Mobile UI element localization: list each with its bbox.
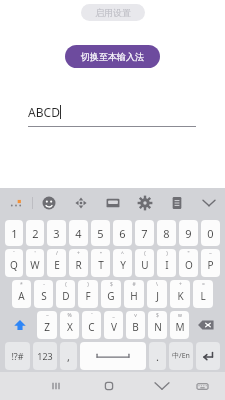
staticText: 1 <box>11 226 18 241</box>
button[interactable]: - <box>34 280 53 308</box>
staticText: w <box>178 312 182 319</box>
button[interactable]: ) <box>157 249 176 277</box>
button[interactable]: Handwriting <box>97 188 129 218</box>
button[interactable]: More <box>0 188 32 218</box>
button[interactable]: !?# <box>5 342 30 370</box>
button[interactable]: ~ <box>201 249 220 277</box>
staticText: M <box>175 320 185 334</box>
staticText: T <box>98 258 104 272</box>
button[interactable]: 5 <box>91 220 110 246</box>
button[interactable]: 切换至本输入法 <box>65 45 160 68</box>
button[interactable]: ) <box>78 280 98 308</box>
button[interactable]: = <box>193 280 213 308</box>
button[interactable]: 123 <box>33 342 57 370</box>
staticText: . <box>156 349 159 364</box>
button[interactable]: Recents <box>43 373 69 399</box>
button[interactable]: + <box>170 280 190 308</box>
staticText: H <box>130 289 138 303</box>
button[interactable]: Keyboard <box>189 373 215 399</box>
staticText: 5 <box>97 226 104 241</box>
staticText: 3 <box>53 226 60 241</box>
button[interactable]: _ <box>104 311 123 339</box>
button[interactable]: / <box>47 249 66 277</box>
button[interactable]: 2 <box>26 220 44 246</box>
button[interactable]: ` <box>82 311 101 339</box>
button[interactable]: Clipboard <box>161 188 193 218</box>
button[interactable]: * <box>12 280 31 308</box>
button[interactable]: . <box>149 342 166 370</box>
button[interactable]: ^ <box>113 249 132 277</box>
staticText: O <box>185 258 193 272</box>
button[interactable]: 0 <box>201 220 220 246</box>
button[interactable]: ( <box>135 249 154 277</box>
button[interactable]: Back <box>149 373 175 399</box>
staticText: U <box>141 258 149 272</box>
staticText: J <box>156 289 159 303</box>
staticText: ( <box>144 250 146 257</box>
staticText: P <box>207 258 214 272</box>
button[interactable]: 1 <box>5 220 23 246</box>
button[interactable]: v <box>126 311 145 339</box>
staticText: Z <box>44 320 50 334</box>
staticText: A <box>18 289 25 303</box>
staticText: - <box>43 281 45 288</box>
button[interactable]: % <box>60 311 79 339</box>
staticText: Y <box>120 258 126 272</box>
button[interactable]: , <box>60 342 77 370</box>
button[interactable]: # <box>124 280 144 308</box>
staticText: 123 <box>37 350 53 362</box>
staticText: \ <box>156 281 158 288</box>
button[interactable]: • <box>91 249 110 277</box>
button[interactable]: 8 <box>157 220 176 246</box>
button[interactable]: Space <box>80 342 146 370</box>
staticText: 2 <box>32 226 39 241</box>
button[interactable]: \ <box>147 280 167 308</box>
button[interactable]: ' <box>26 249 44 277</box>
button[interactable]: 3 <box>47 220 66 246</box>
staticText: V <box>111 320 117 334</box>
staticText: 6 <box>119 226 126 241</box>
staticText: 0 <box>207 226 214 241</box>
staticText: ` <box>91 312 93 319</box>
staticText: C <box>88 320 95 334</box>
button[interactable]: 9 <box>179 220 198 246</box>
button[interactable]: + <box>69 249 88 277</box>
button[interactable]: Home <box>96 373 122 399</box>
button[interactable]: 启用设置 <box>81 4 145 21</box>
staticText: % <box>67 312 72 319</box>
button[interactable]: 7 <box>135 220 154 246</box>
staticText: E <box>54 258 60 272</box>
button[interactable]: ( <box>56 280 75 308</box>
staticText: 9 <box>185 226 192 241</box>
staticText: !?# <box>11 350 24 362</box>
staticText: X <box>67 320 73 334</box>
staticText: ( <box>65 281 67 288</box>
staticText: ) <box>87 281 89 288</box>
button[interactable]: 中/En <box>169 342 193 370</box>
button[interactable]: Collapse keyboard <box>193 188 225 218</box>
staticText: 切换至本输入法 <box>81 51 144 62</box>
button[interactable]: 4 <box>69 220 88 246</box>
button[interactable]: Backspace <box>192 311 220 339</box>
button[interactable]: ABCD <box>28 104 196 127</box>
staticText: , <box>67 349 70 364</box>
button[interactable]: Shift <box>5 311 34 339</box>
staticText: K <box>177 289 184 303</box>
button[interactable]: Settings <box>129 188 161 218</box>
staticText: # <box>132 281 136 288</box>
button[interactable]: Emoji <box>33 188 65 218</box>
button[interactable]: Move cursor <box>65 188 97 218</box>
button[interactable]: $ <box>148 311 167 339</box>
button[interactable]: 6 <box>113 220 132 246</box>
staticText: W <box>30 258 40 272</box>
button[interactable]: w <box>170 311 189 339</box>
staticText: G <box>107 289 115 303</box>
button[interactable]: " <box>179 249 198 277</box>
button[interactable]: Enter <box>196 342 220 370</box>
button[interactable]: ~ <box>37 311 57 339</box>
staticText: F <box>85 289 91 303</box>
staticText: _ <box>112 312 115 319</box>
button[interactable]: $ <box>101 280 121 308</box>
staticText: L <box>200 289 206 303</box>
button[interactable]: ` <box>5 249 23 277</box>
